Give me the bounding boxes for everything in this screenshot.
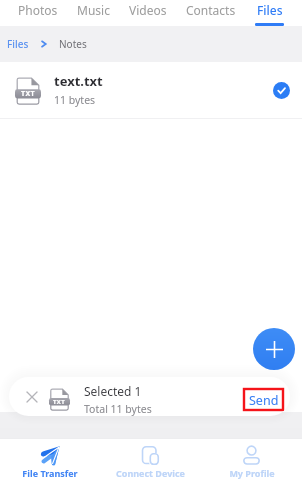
staticText: text.txt: [54, 72, 103, 90]
button[interactable]: Files: [255, 0, 284, 26]
staticText: My Profile: [229, 467, 275, 479]
staticText: TXT: [21, 89, 35, 99]
button[interactable]: Connect Device: [100, 439, 201, 480]
button[interactable]: Close: [23, 388, 41, 406]
button[interactable]: Files: [7, 37, 29, 51]
staticText: Music: [77, 2, 110, 18]
staticText: File Transfer: [22, 467, 78, 479]
button[interactable]: Send: [244, 389, 283, 410]
button[interactable]: File Transfer: [0, 439, 100, 480]
staticText: Videos: [129, 2, 167, 18]
button[interactable]: Music: [77, 0, 110, 26]
staticText: Notes: [59, 37, 87, 51]
staticText: Selected 1: [84, 383, 142, 399]
staticText: Files: [257, 2, 283, 18]
staticText: 11 bytes: [54, 93, 96, 107]
staticText: Connect Device: [116, 467, 185, 479]
staticText: Total 11 bytes: [84, 402, 152, 416]
staticText: Send: [249, 392, 279, 409]
button[interactable]: Photos: [18, 0, 58, 26]
button[interactable]: Add: [253, 328, 295, 370]
staticText: Contacts: [186, 2, 236, 18]
button[interactable]: Videos: [129, 0, 167, 26]
button[interactable]: TXT: [0, 62, 302, 119]
button[interactable]: Contacts: [186, 0, 236, 26]
staticText: TXT: [53, 398, 66, 406]
staticText: Photos: [18, 2, 58, 18]
staticText: Files: [7, 37, 29, 51]
button[interactable]: My Profile: [201, 439, 302, 480]
